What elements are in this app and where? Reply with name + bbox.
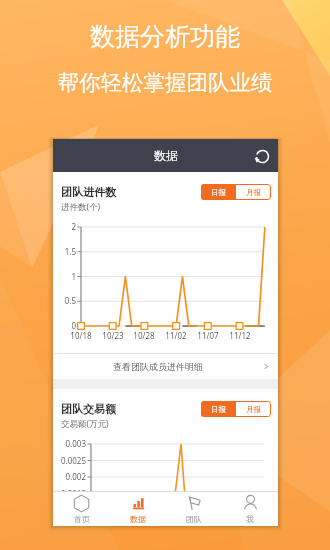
staticText: 0.0015 — [53, 488, 86, 499]
button[interactable]: 数据 — [110, 492, 166, 526]
staticText: 帮你轻松掌握团队业绩 — [0, 69, 330, 96]
staticText: 数据分析功能 — [0, 21, 330, 52]
button[interactable]: 团队 — [166, 492, 222, 526]
staticText: 团队 — [186, 514, 202, 524]
staticText: 数据 — [154, 148, 178, 163]
button[interactable]: Refresh — [252, 146, 272, 166]
staticText: 10/23 — [97, 330, 129, 341]
staticText: 月报 — [246, 405, 261, 414]
button[interactable]: 我 — [222, 492, 278, 526]
staticText: 0.5 — [53, 295, 76, 306]
button[interactable]: 查看团队成员进件明细 — [53, 354, 278, 379]
staticText: 月报 — [246, 188, 261, 197]
staticText: 日报 — [211, 405, 226, 414]
staticText: 交易额(万元) — [61, 418, 109, 430]
staticText: 日报 — [211, 188, 226, 197]
staticText: 0.002 — [53, 471, 86, 482]
staticText: 0 — [53, 320, 76, 331]
staticText: 10/28 — [128, 330, 160, 341]
button[interactable]: 日报 — [201, 401, 236, 417]
staticText: 1.5 — [53, 246, 76, 257]
button[interactable]: 月报 — [236, 184, 271, 200]
staticText: 2 — [53, 221, 76, 232]
staticText: 我 — [246, 514, 254, 524]
staticText: 11/12 — [224, 330, 256, 341]
staticText: 1 — [53, 271, 76, 282]
staticText: 0.0025 — [53, 455, 86, 466]
button[interactable]: 日报 — [201, 184, 236, 200]
staticText: 数据 — [130, 514, 146, 524]
staticText: 11/07 — [192, 330, 224, 341]
staticText: 首页 — [74, 514, 90, 524]
staticText: 团队进件数 — [61, 185, 116, 199]
button[interactable]: 首页 — [53, 492, 110, 526]
staticText: 0.003 — [53, 438, 86, 449]
staticText: 团队交易额 — [61, 402, 116, 416]
staticText: 11/02 — [160, 330, 192, 341]
staticText: 10/18 — [65, 330, 97, 341]
button[interactable]: 月报 — [236, 401, 271, 417]
staticText: 查看团队成员进件明细 — [113, 361, 203, 372]
staticText: 进件数(个) — [61, 201, 101, 213]
